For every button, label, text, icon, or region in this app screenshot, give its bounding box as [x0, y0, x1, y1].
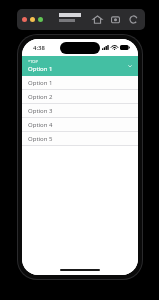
staticText: *TOP	[28, 59, 38, 64]
button[interactable]: Option 2	[22, 90, 138, 103]
staticText: Option 3	[28, 107, 53, 115]
button[interactable]: Option 1	[22, 76, 138, 89]
staticText: Option 4	[28, 121, 53, 129]
staticText: Option 1	[28, 65, 53, 73]
staticText: Option 2	[28, 93, 53, 101]
button[interactable]: Home	[92, 14, 103, 25]
staticText: 4:38	[33, 44, 45, 52]
button[interactable]: Minimize	[30, 17, 35, 22]
button[interactable]: Option 5	[22, 132, 138, 145]
button[interactable]: Record	[128, 14, 139, 25]
button[interactable]: Option 4	[22, 118, 138, 131]
staticText: Option 5	[28, 135, 53, 143]
staticText: Option 1	[28, 79, 53, 87]
button[interactable]: Screenshot	[110, 14, 121, 25]
button[interactable]: Close	[22, 17, 27, 22]
button[interactable]: *TOP	[22, 56, 138, 76]
button[interactable]: Maximize	[38, 17, 43, 22]
button[interactable]: Option 3	[22, 104, 138, 117]
